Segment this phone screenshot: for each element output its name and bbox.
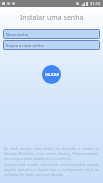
staticText: Repita a nova senha	[6, 43, 44, 48]
staticText: Ao você instalar uma senha, ela bloqueia…	[4, 146, 99, 161]
staticText: Nova senha	[6, 32, 29, 37]
button[interactable]: Nova senha	[3, 29, 100, 39]
staticText: 21:12	[90, 1, 101, 6]
button[interactable]: Repita a nova senha	[3, 40, 100, 50]
staticText: Instalar uma senha	[20, 13, 84, 23]
button[interactable]: VALIDAR	[42, 65, 61, 84]
staticText: VALIDAR	[45, 72, 59, 77]
staticText: Quando você instalar uma senha, ela será…	[4, 162, 99, 177]
